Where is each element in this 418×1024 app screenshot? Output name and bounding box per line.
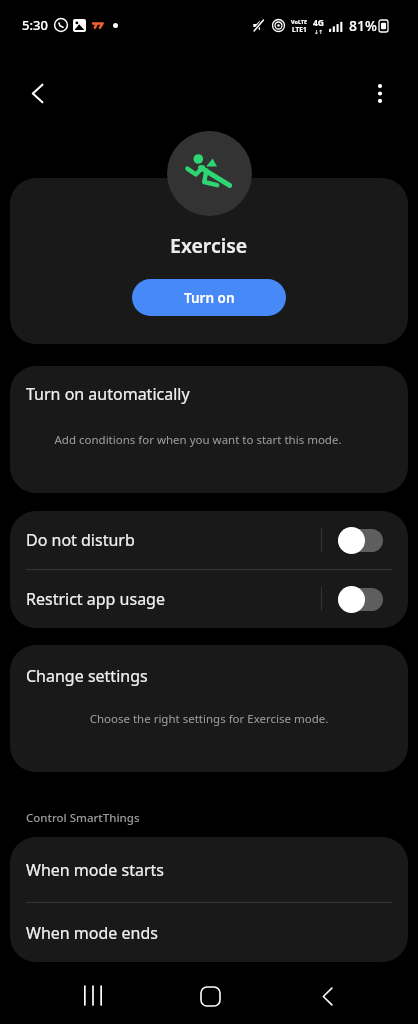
staticText: Do not disturb — [26, 529, 321, 551]
button[interactable]: Turn on automatically — [10, 366, 408, 493]
staticText: ↓↑ — [314, 29, 324, 35]
button[interactable]: When mode starts — [10, 837, 408, 902]
button[interactable]: Do not disturb — [338, 527, 383, 554]
staticText: Control SmartThings — [26, 810, 140, 826]
staticText: Add conditions for when you want to star… — [10, 432, 397, 448]
staticText: VoLTE — [291, 18, 308, 25]
staticText: Turn on automatically — [26, 383, 190, 405]
button[interactable]: Turn on — [132, 279, 286, 316]
button[interactable]: Do not disturb — [10, 511, 408, 569]
staticText: 81% — [349, 16, 377, 35]
staticText: Restrict app usage — [26, 588, 321, 610]
button[interactable]: Recent apps — [65, 967, 121, 1023]
button[interactable]: Restrict app usage — [10, 570, 408, 628]
button[interactable]: More options — [358, 71, 402, 115]
staticText: Choose the right settings for Exercise m… — [10, 711, 408, 727]
staticText: Exercise — [170, 232, 248, 259]
staticText: 5:30 — [22, 16, 48, 34]
button[interactable]: Back — [299, 968, 355, 1024]
button[interactable]: Restrict app usage — [338, 586, 383, 613]
button[interactable]: When mode ends — [10, 903, 408, 962]
button[interactable]: Home — [182, 968, 238, 1024]
button[interactable]: Navigate up — [15, 71, 59, 115]
staticText: When mode ends — [26, 922, 158, 944]
staticText: LTE1 — [292, 25, 307, 34]
button[interactable]: Change settings — [10, 645, 408, 772]
staticText: Turn on — [184, 289, 235, 307]
staticText: 4G — [313, 17, 325, 29]
staticText: When mode starts — [26, 859, 164, 881]
staticText: Change settings — [26, 665, 148, 687]
